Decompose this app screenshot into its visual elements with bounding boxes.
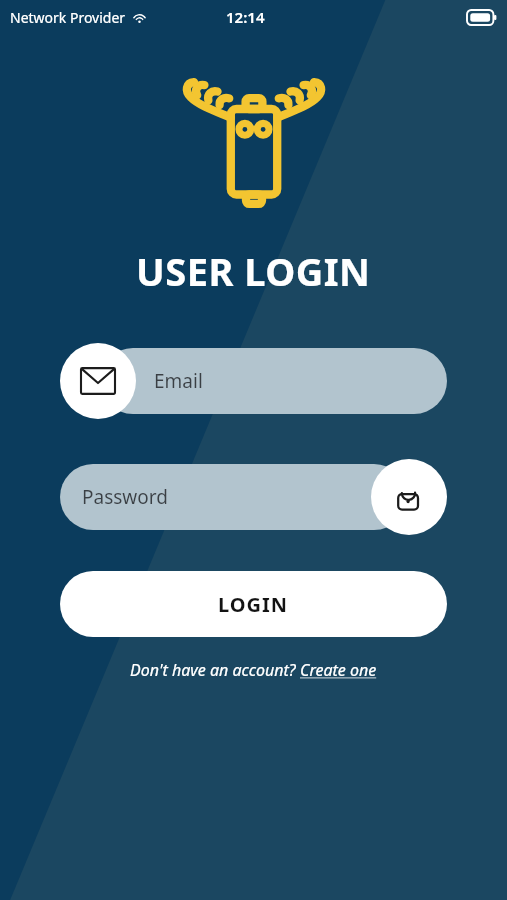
staticText: 12:14 [226, 7, 265, 27]
other: Show password [371, 459, 447, 535]
staticText: LOGIN [218, 591, 289, 618]
staticText: Network Provider [10, 8, 126, 27]
button[interactable]: Password [60, 459, 447, 535]
button[interactable]: Create one [300, 659, 377, 681]
staticText: Create one [300, 659, 377, 681]
staticText: Password [82, 484, 168, 510]
staticText: Don't have an account? [130, 659, 300, 681]
staticText: USER LOGIN [136, 245, 371, 297]
staticText: Email [154, 368, 203, 394]
button[interactable]: LOGIN [60, 571, 447, 637]
button[interactable]: Email [60, 343, 447, 419]
